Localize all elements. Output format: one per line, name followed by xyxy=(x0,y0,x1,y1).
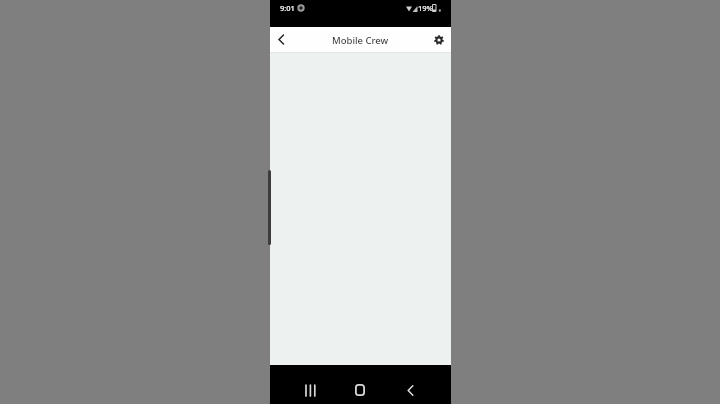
button[interactable] xyxy=(298,378,322,402)
button[interactable] xyxy=(268,170,271,245)
button[interactable] xyxy=(272,30,291,49)
staticText: Mobile Crew xyxy=(332,34,389,47)
staticText: 9:01 xyxy=(280,3,295,13)
button[interactable] xyxy=(398,378,422,402)
staticText: 19% xyxy=(418,3,433,13)
button[interactable] xyxy=(430,30,448,49)
button[interactable] xyxy=(348,378,372,402)
